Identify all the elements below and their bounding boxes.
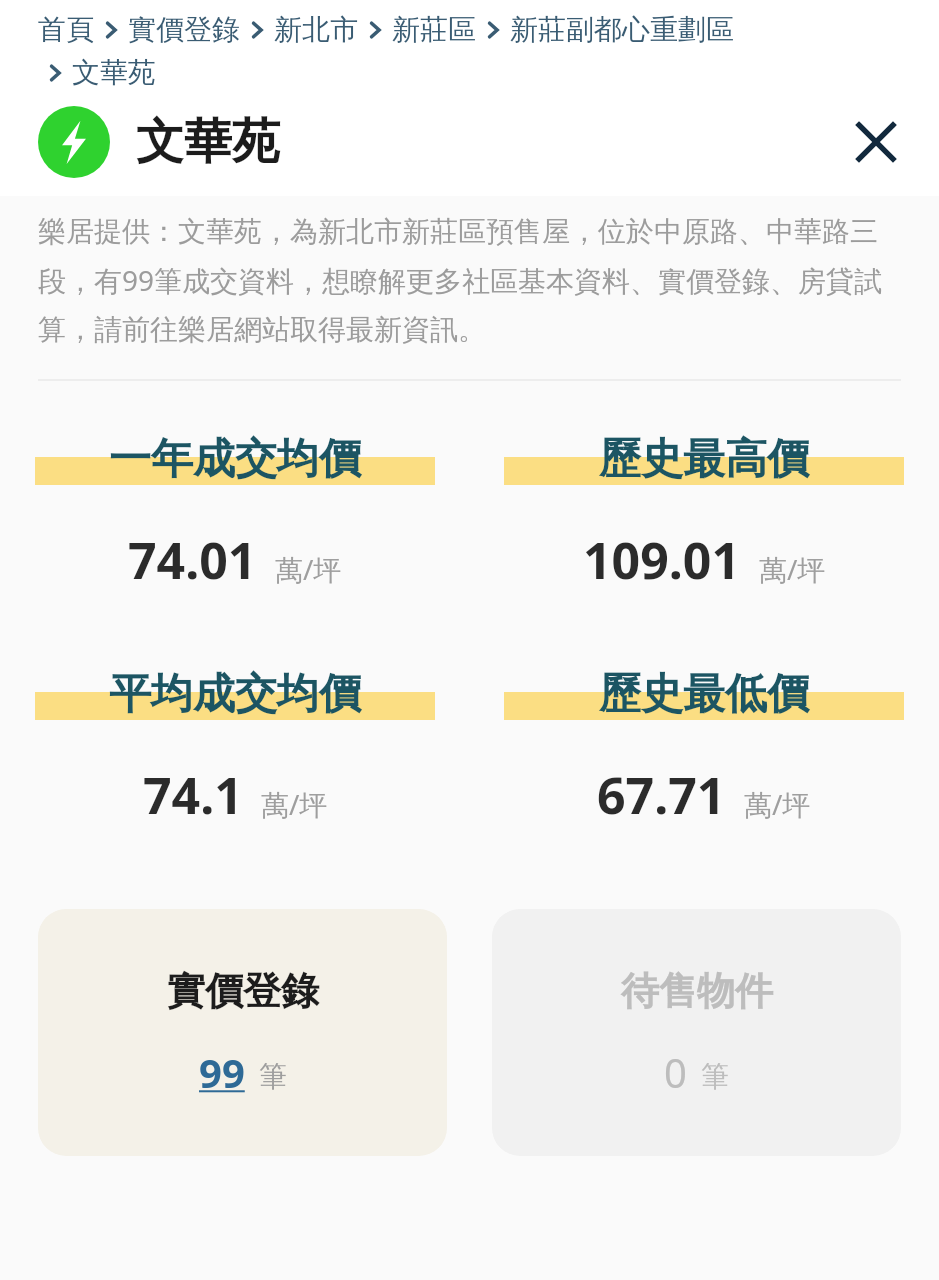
staticText: 新莊區 [392,12,476,47]
staticText: 實價登錄 [128,12,240,47]
staticText: 74.01 [128,526,257,594]
staticText: 74.1 [143,761,243,829]
button[interactable]: 新北市 [274,12,358,47]
button[interactable]: 新莊副都心重劃區 [510,12,734,47]
button[interactable]: 新莊區 [392,12,476,47]
button[interactable]: 實價登錄 [128,12,240,47]
staticText: 新北市 [274,12,358,47]
staticText: 文華苑 [136,112,280,172]
staticText: 萬/坪 [759,550,826,588]
staticText: 平均成交均價 [109,668,361,721]
staticText: 萬/坪 [744,785,811,823]
staticText: 0 [664,1045,687,1099]
button[interactable]: 首頁 [38,12,94,47]
button[interactable]: 實價登錄 [38,909,447,1156]
staticText: 待售物件 [621,967,773,1015]
staticText: 一年成交均價 [109,433,361,486]
button[interactable]: 文華苑 [72,55,156,90]
staticText: 首頁 [38,12,94,47]
staticText: 99 [199,1045,245,1099]
staticText: 實價登錄 [167,967,319,1015]
button[interactable]: 待售物件 [492,909,901,1156]
staticText: 新莊副都心重劃區 [510,12,734,47]
staticText: 文華苑 [72,55,156,90]
staticText: 筆 [701,1059,729,1094]
staticText: 109.01 [583,526,741,594]
button[interactable]: Close [845,111,907,173]
staticText: 萬/坪 [275,550,342,588]
staticText: 歷史最高價 [599,433,809,486]
staticText: 歷史最低價 [599,668,809,721]
staticText: 樂居提供：文華苑，為新北市新莊區預售屋，位於中原路、中華路三段，有99筆成交資料… [38,214,905,347]
staticText: 67.71 [597,761,726,829]
staticText: 筆 [259,1059,287,1094]
staticText: 萬/坪 [261,785,328,823]
